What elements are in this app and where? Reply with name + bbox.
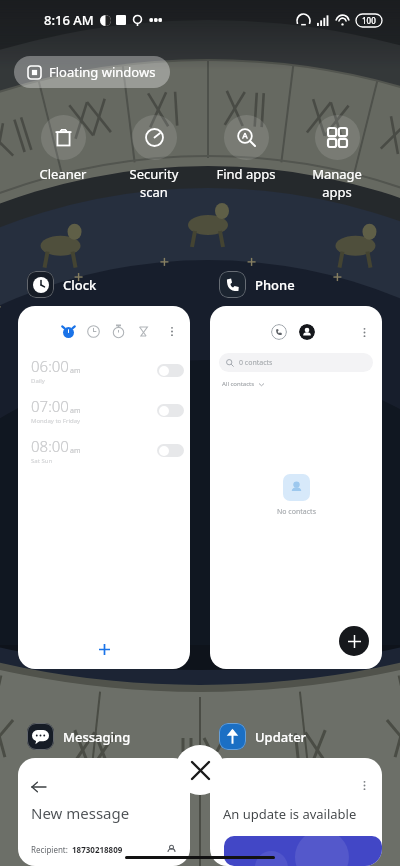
button[interactable]: Dialpad [271, 324, 287, 340]
staticText: No contacts [277, 507, 316, 517]
staticText: Updater [255, 728, 307, 746]
button[interactable]: Back [31, 779, 47, 795]
staticText: An update is available [223, 805, 357, 823]
staticText: Phone [255, 276, 295, 294]
button[interactable]: Clock [27, 271, 97, 298]
button[interactable]: 08:00 [31, 430, 184, 470]
staticText: Messaging [63, 728, 131, 746]
staticText: 18730218809 [72, 844, 123, 855]
staticText: am [70, 366, 81, 376]
button[interactable]: 06:00 [18, 306, 190, 669]
staticText: New message [31, 803, 130, 823]
staticText: 06:00 [31, 356, 69, 376]
staticText: All contacts [222, 380, 255, 388]
button[interactable]: Dialpad [210, 306, 382, 669]
staticText: Sat Sun [31, 457, 53, 465]
staticText: Security scan [111, 165, 197, 201]
staticText: am [70, 446, 81, 456]
staticText: Daily [31, 377, 45, 385]
button[interactable]: Updater [219, 723, 307, 750]
staticText: Monday to Friday [31, 417, 81, 425]
staticText: 0 contacts [239, 358, 273, 368]
button[interactable]: 0 contacts [219, 353, 373, 372]
button[interactable]: Messaging [27, 723, 131, 750]
button[interactable]: Find apps [203, 115, 289, 183]
staticText: 08:00 [31, 436, 69, 456]
button[interactable]: Contacts [299, 324, 315, 340]
staticText: Manage apps [294, 165, 380, 201]
staticText: Cleaner [20, 165, 106, 183]
button[interactable]: Close all [175, 745, 225, 795]
button[interactable]: Back [18, 758, 190, 866]
staticText: Floating windows [49, 63, 156, 81]
staticText: Clock [63, 276, 97, 294]
staticText: 100 [362, 15, 376, 26]
button[interactable]: Phone [219, 271, 295, 298]
staticText: Find apps [203, 165, 289, 183]
button[interactable]: Security scan [111, 115, 197, 201]
staticText: 07:00 [31, 396, 69, 416]
button[interactable]: Add alarm [87, 632, 121, 666]
button[interactable]: Floating windows [14, 56, 170, 88]
button[interactable]: Manage apps [294, 115, 380, 201]
staticText: am [70, 406, 81, 416]
button[interactable]: An update is available [210, 758, 382, 866]
staticText: Recipient: [31, 844, 68, 855]
staticText: 8:16 AM [44, 11, 94, 29]
button[interactable]: 07:00 [31, 390, 184, 430]
button[interactable]: Add contact [339, 626, 369, 656]
button[interactable]: 06:00 [31, 350, 184, 390]
button[interactable]: Cleaner [20, 115, 106, 183]
staticText: ••• [149, 12, 163, 28]
